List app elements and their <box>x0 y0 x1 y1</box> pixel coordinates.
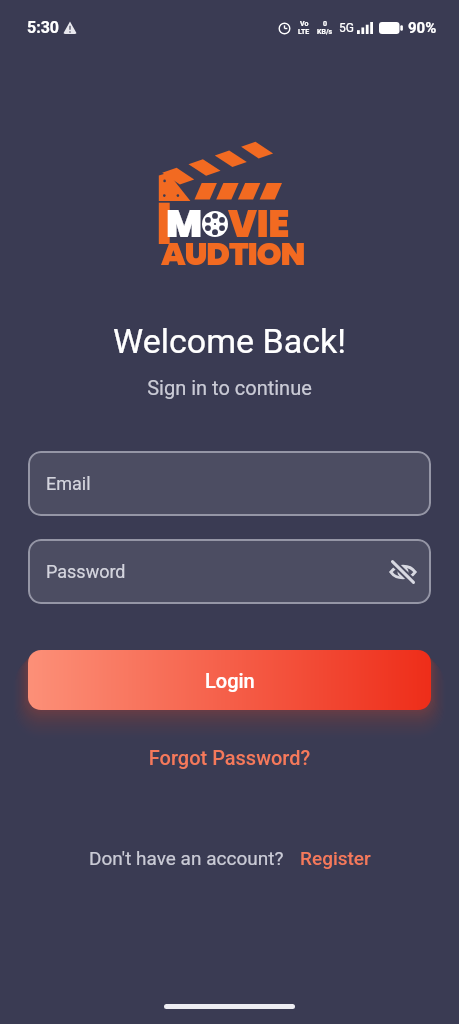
staticText: M <box>166 197 202 250</box>
staticText: LTE <box>298 28 310 36</box>
staticText: Don't have an account? <box>89 847 284 869</box>
staticText: AUDTION <box>161 231 305 276</box>
staticText: Welcome Back! <box>0 321 459 361</box>
staticText: Password <box>46 561 126 582</box>
staticText: Login <box>205 669 255 692</box>
button[interactable]: Forgot Password? <box>0 746 459 769</box>
staticText: 90% <box>408 19 437 37</box>
staticText: KB/s <box>317 28 333 36</box>
staticText: Vo <box>300 20 309 28</box>
button[interactable]: Show password <box>386 555 420 589</box>
button[interactable]: Register <box>300 847 371 869</box>
staticText: 5:30 <box>27 18 60 37</box>
staticText: Email <box>46 473 91 494</box>
button[interactable]: Login <box>28 650 431 710</box>
staticText: Register <box>300 847 371 869</box>
button[interactable]: Email <box>28 451 431 516</box>
staticText: 5G <box>339 21 354 35</box>
staticText: Sign in to continue <box>0 376 459 399</box>
staticText: 0 <box>323 20 328 28</box>
staticText: VIE <box>228 197 289 250</box>
button[interactable]: Password <box>28 539 431 604</box>
